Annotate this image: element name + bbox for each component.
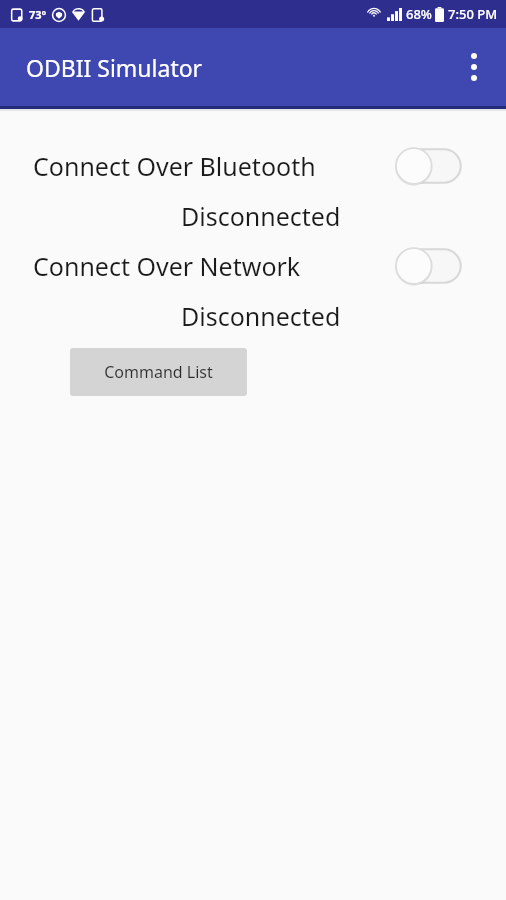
staticText: Command List <box>104 361 213 383</box>
button[interactable]: More options <box>450 43 498 91</box>
button[interactable]: Command List <box>70 348 247 396</box>
staticText: Connect Over Bluetooth <box>33 149 316 183</box>
staticText: 68% <box>406 5 432 23</box>
staticText: Disconnected <box>181 299 341 333</box>
button[interactable]: Connect Over Network <box>0 241 506 291</box>
staticText: 7:50 PM <box>448 5 498 23</box>
staticText: Disconnected <box>181 199 341 233</box>
button[interactable]: Connect Over Bluetooth <box>0 141 506 191</box>
staticText: 73° <box>29 7 47 22</box>
staticText: Connect Over Network <box>33 249 301 283</box>
staticText: ODBII Simulator <box>26 52 203 83</box>
